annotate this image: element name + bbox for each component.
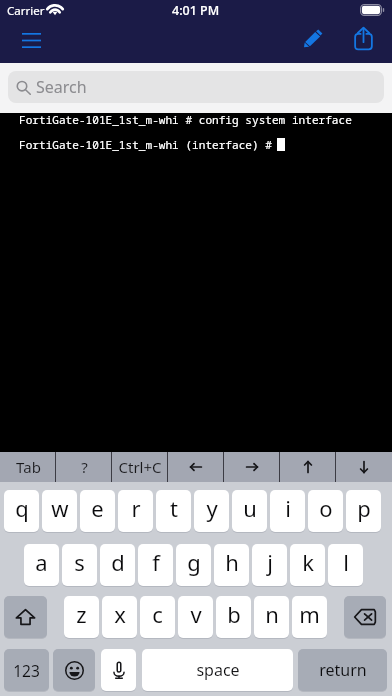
staticText: 4:01 PM xyxy=(172,2,220,19)
staticText: e xyxy=(91,493,104,523)
button[interactable]: q xyxy=(4,490,39,532)
staticText: FortiGate-101E_1st_m-whi # config system… xyxy=(19,112,352,127)
button[interactable]: k xyxy=(290,544,325,586)
button[interactable]: v xyxy=(178,596,213,638)
button[interactable]: u xyxy=(232,490,267,532)
staticText: u xyxy=(243,493,257,523)
button[interactable]: 123 xyxy=(4,649,49,691)
button[interactable]: Search xyxy=(8,71,384,103)
staticText: m xyxy=(299,599,320,629)
staticText: p xyxy=(357,493,371,523)
staticText: c xyxy=(152,599,163,629)
staticText: FortiGate-101E_1st_m-whi (interface) # xyxy=(19,137,272,152)
staticText: v xyxy=(190,599,202,629)
button[interactable]: Up xyxy=(280,452,336,482)
button[interactable]: e xyxy=(80,490,115,532)
staticText: Tab xyxy=(16,457,41,477)
button[interactable]: space xyxy=(142,649,293,691)
button[interactable]: Down xyxy=(336,452,392,482)
button[interactable]: ? xyxy=(56,452,112,482)
button[interactable]: p xyxy=(346,490,381,532)
staticText: j xyxy=(267,547,273,577)
button[interactable]: n xyxy=(254,596,289,638)
button[interactable]: Shift xyxy=(4,596,47,638)
button[interactable]: Backspace xyxy=(344,596,386,638)
button[interactable]: i xyxy=(270,490,305,532)
staticText: space xyxy=(196,659,240,681)
staticText: Search xyxy=(36,76,87,98)
staticText: b xyxy=(227,599,241,629)
staticText: g xyxy=(187,547,201,577)
staticText: i xyxy=(285,493,291,523)
staticText: return xyxy=(319,659,367,681)
button[interactable]: r xyxy=(118,490,153,532)
staticText: q xyxy=(15,493,29,523)
button[interactable]: l xyxy=(328,544,363,586)
button[interactable]: s xyxy=(62,544,97,586)
staticText: f xyxy=(152,547,160,577)
button[interactable]: j xyxy=(252,544,287,586)
staticText: n xyxy=(265,599,279,629)
button[interactable]: g xyxy=(176,544,211,586)
button[interactable]: x xyxy=(102,596,137,638)
staticText: a xyxy=(35,547,48,577)
staticText: Carrier xyxy=(7,3,45,19)
button[interactable]: a xyxy=(24,544,59,586)
button[interactable]: d xyxy=(100,544,135,586)
button[interactable]: m xyxy=(292,596,327,638)
staticText: z xyxy=(76,599,87,629)
staticText: x xyxy=(114,599,126,629)
button[interactable]: Ctrl+C xyxy=(112,452,168,482)
staticText: r xyxy=(131,493,141,523)
staticText: Ctrl+C xyxy=(118,457,162,477)
button[interactable]: Right xyxy=(224,452,280,482)
button[interactable]: Share xyxy=(346,21,380,55)
button[interactable]: h xyxy=(214,544,249,586)
staticText: h xyxy=(225,547,239,577)
button[interactable]: Emoji xyxy=(53,649,95,691)
button[interactable]: Dictate xyxy=(101,649,136,691)
staticText: t xyxy=(170,493,178,523)
button[interactable]: Left xyxy=(168,452,224,482)
button[interactable]: return xyxy=(298,649,387,691)
button[interactable]: c xyxy=(140,596,175,638)
button[interactable]: y xyxy=(194,490,229,532)
button[interactable]: z xyxy=(64,596,99,638)
button[interactable]: Compose xyxy=(295,22,329,56)
button[interactable]: f xyxy=(138,544,173,586)
button[interactable]: Tab xyxy=(0,452,56,482)
staticText: w xyxy=(51,493,69,523)
button[interactable]: o xyxy=(308,490,343,532)
staticText: ? xyxy=(81,457,88,477)
button[interactable]: t xyxy=(156,490,191,532)
button[interactable]: b xyxy=(216,596,251,638)
staticText: k xyxy=(302,547,314,577)
button[interactable]: Menu xyxy=(12,24,50,56)
staticText: s xyxy=(74,547,85,577)
staticText: y xyxy=(206,493,218,523)
staticText: o xyxy=(319,493,333,523)
staticText: d xyxy=(111,547,125,577)
staticText: 123 xyxy=(13,660,40,681)
staticText: l xyxy=(343,547,349,577)
button[interactable]: w xyxy=(42,490,77,532)
